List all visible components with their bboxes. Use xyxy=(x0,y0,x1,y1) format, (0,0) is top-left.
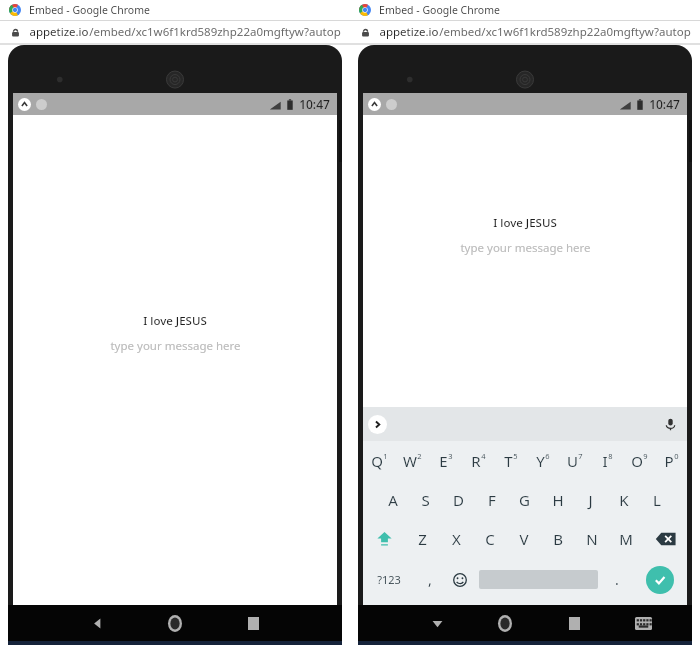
staticText: 8 xyxy=(608,451,613,461)
staticText: 0 xyxy=(674,451,679,461)
button[interactable]: Home xyxy=(160,608,190,638)
button[interactable]: Hide keyboard xyxy=(422,608,452,638)
staticText: R xyxy=(471,451,481,471)
button[interactable]: G xyxy=(508,480,541,519)
button[interactable]: type your message here xyxy=(460,240,591,256)
staticText: V xyxy=(519,529,529,549)
button[interactable]: Back xyxy=(82,608,112,638)
button[interactable]: M xyxy=(609,519,643,558)
button[interactable]: C xyxy=(473,519,507,558)
button[interactable]: type your message here xyxy=(110,338,241,354)
button[interactable]: F xyxy=(475,480,508,519)
staticText: 4 xyxy=(481,451,486,461)
staticText: Embed - Google Chrome xyxy=(379,3,500,17)
staticText: 10:47 xyxy=(649,96,680,112)
button[interactable]: Expand suggestions xyxy=(368,415,387,434)
staticText: 9 xyxy=(643,451,648,461)
staticText: J xyxy=(588,490,593,510)
button[interactable]: X xyxy=(439,519,473,558)
staticText: K xyxy=(619,490,629,510)
button[interactable]: Enter xyxy=(646,566,674,594)
button[interactable]: T xyxy=(495,441,527,480)
button[interactable]: Shift xyxy=(363,519,406,558)
staticText: Embed - Google Chrome xyxy=(29,3,150,17)
staticText: T xyxy=(504,451,513,471)
button[interactable]: , xyxy=(415,558,445,601)
button[interactable]: Q xyxy=(363,441,396,480)
button[interactable]: Recent apps xyxy=(238,608,268,638)
staticText: , xyxy=(428,570,432,589)
staticText: /embed/xc1w6f1krd589zhp22a0mgftyw?autop xyxy=(439,24,691,40)
staticText: 3 xyxy=(448,451,453,461)
staticText: type your message here xyxy=(460,240,591,256)
staticText: O xyxy=(631,451,643,471)
button[interactable]: Emoji xyxy=(445,558,475,601)
staticText: E xyxy=(439,451,448,471)
button[interactable]: J xyxy=(574,480,607,519)
staticText: I love JESUS xyxy=(493,215,557,231)
button[interactable]: L xyxy=(640,480,673,519)
button[interactable]: K xyxy=(607,480,640,519)
staticText: M xyxy=(619,529,633,549)
staticText: 7 xyxy=(578,451,583,461)
staticText: type your message here xyxy=(110,338,241,354)
staticText: 6 xyxy=(545,451,550,461)
staticText: I xyxy=(602,451,608,471)
button[interactable]: O xyxy=(623,441,655,480)
button[interactable]: Backspace xyxy=(643,519,687,558)
staticText: L xyxy=(653,490,661,510)
staticText: P xyxy=(664,451,674,471)
staticText: C xyxy=(485,529,495,549)
button[interactable]: Voice input xyxy=(660,414,680,434)
staticText: A xyxy=(388,490,398,510)
staticText: ?123 xyxy=(377,572,401,587)
button[interactable]: . xyxy=(602,558,632,601)
staticText: W xyxy=(403,451,417,471)
staticText: G xyxy=(519,490,530,510)
staticText: /embed/xc1w6f1krd589zhp22a0mgftyw?autop xyxy=(89,24,341,40)
button[interactable]: Z xyxy=(406,519,439,558)
staticText: 1 xyxy=(383,451,388,461)
button[interactable]: D xyxy=(442,480,475,519)
button[interactable]: P xyxy=(655,441,687,480)
staticText: 5 xyxy=(513,451,518,461)
button[interactable]: A xyxy=(377,480,409,519)
staticText: U xyxy=(567,451,578,471)
button[interactable]: B xyxy=(541,519,575,558)
button[interactable]: ?123 xyxy=(363,558,415,601)
staticText: X xyxy=(452,529,461,549)
staticText: Q xyxy=(371,451,383,471)
staticText: S xyxy=(421,490,430,510)
staticText: N xyxy=(586,529,598,549)
button[interactable]: U xyxy=(559,441,591,480)
staticText: 10:47 xyxy=(299,96,330,112)
staticText: H xyxy=(552,490,564,510)
staticText: appetize.io xyxy=(379,24,439,40)
button[interactable]: Home xyxy=(490,608,520,638)
button[interactable]: Switch keyboard xyxy=(628,608,658,638)
staticText: F xyxy=(488,490,496,510)
staticText: Z xyxy=(418,529,427,549)
button[interactable]: Y xyxy=(527,441,559,480)
button[interactable]: R xyxy=(462,441,495,480)
button[interactable]: H xyxy=(541,480,574,519)
staticText: . xyxy=(615,570,619,589)
button[interactable]: W xyxy=(396,441,429,480)
staticText: D xyxy=(453,490,464,510)
staticText: Y xyxy=(536,451,545,471)
staticText: appetize.io xyxy=(29,24,89,40)
staticText: B xyxy=(553,529,563,549)
staticText: I love JESUS xyxy=(143,313,207,329)
button[interactable]: S xyxy=(409,480,442,519)
staticText: 2 xyxy=(417,451,422,461)
button[interactable]: I xyxy=(591,441,623,480)
button[interactable]: E xyxy=(429,441,462,480)
button[interactable]: V xyxy=(507,519,541,558)
button[interactable]: Recent apps xyxy=(559,608,589,638)
button[interactable]: N xyxy=(575,519,609,558)
